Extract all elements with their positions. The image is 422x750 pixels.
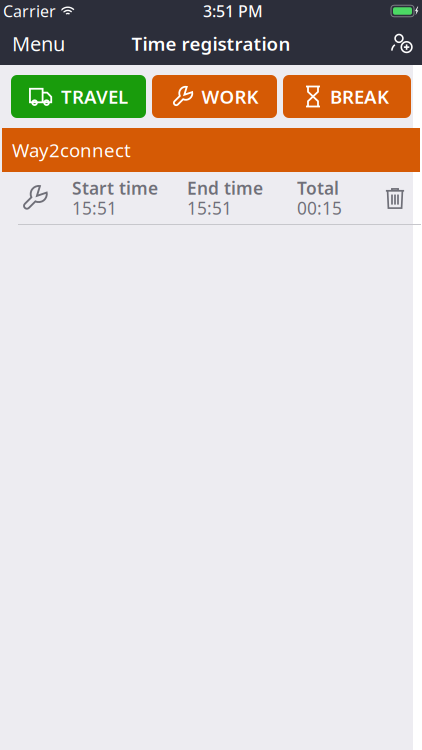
staticText: Carrier <box>3 0 56 22</box>
button[interactable]: Menu <box>0 22 79 65</box>
staticText: WORK <box>201 84 258 109</box>
staticText: 15:51 <box>72 196 117 219</box>
staticText: Way2connect <box>12 138 131 162</box>
staticText: Start time <box>72 176 158 199</box>
staticText: Total <box>297 176 339 199</box>
button[interactable]: TRAVEL <box>11 75 146 118</box>
staticText: 3:51 PM <box>203 0 263 22</box>
staticText: 00:15 <box>297 196 342 219</box>
staticText: End time <box>187 176 263 199</box>
staticText: 15:51 <box>187 196 232 219</box>
staticText: Time registration <box>131 31 290 56</box>
staticText: Menu <box>12 30 65 57</box>
button[interactable]: WORK <box>152 75 277 118</box>
staticText: BREAK <box>330 84 389 109</box>
button[interactable]: Add person <box>377 22 422 65</box>
button[interactable]: BREAK <box>283 75 411 118</box>
staticText: TRAVEL <box>61 84 128 109</box>
button[interactable]: Delete entry <box>375 175 415 221</box>
